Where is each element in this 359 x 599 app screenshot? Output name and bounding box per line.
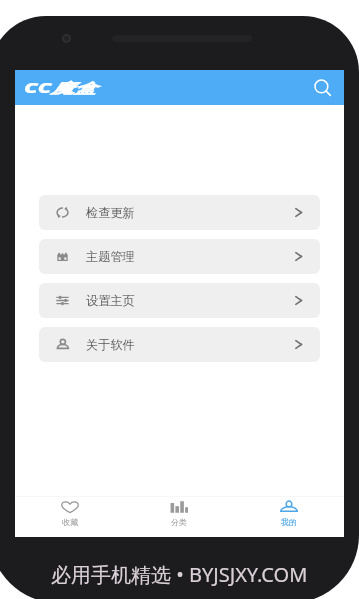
button[interactable]: 检查更新 [39, 195, 320, 230]
button[interactable]: 分类 [124, 496, 234, 537]
staticText: 必用手机精选 • BYJSJXY.COM [51, 561, 308, 588]
button[interactable]: 设置主页 [39, 283, 320, 318]
staticText: CC魔盒 [24, 79, 97, 97]
staticText: 分类 [171, 517, 187, 527]
staticText: 关于软件 [86, 337, 135, 352]
button[interactable]: 我的 [234, 496, 344, 537]
staticText: 我的 [281, 517, 297, 527]
button[interactable]: Search [305, 70, 340, 105]
staticText: 检查更新 [86, 205, 135, 220]
staticText: 设置主页 [86, 293, 135, 308]
button[interactable]: 收藏 [15, 496, 124, 537]
staticText: 收藏 [62, 517, 78, 527]
staticText: 主题管理 [86, 249, 135, 264]
button[interactable]: 主题管理 [39, 239, 320, 274]
button[interactable]: 关于软件 [39, 327, 320, 362]
